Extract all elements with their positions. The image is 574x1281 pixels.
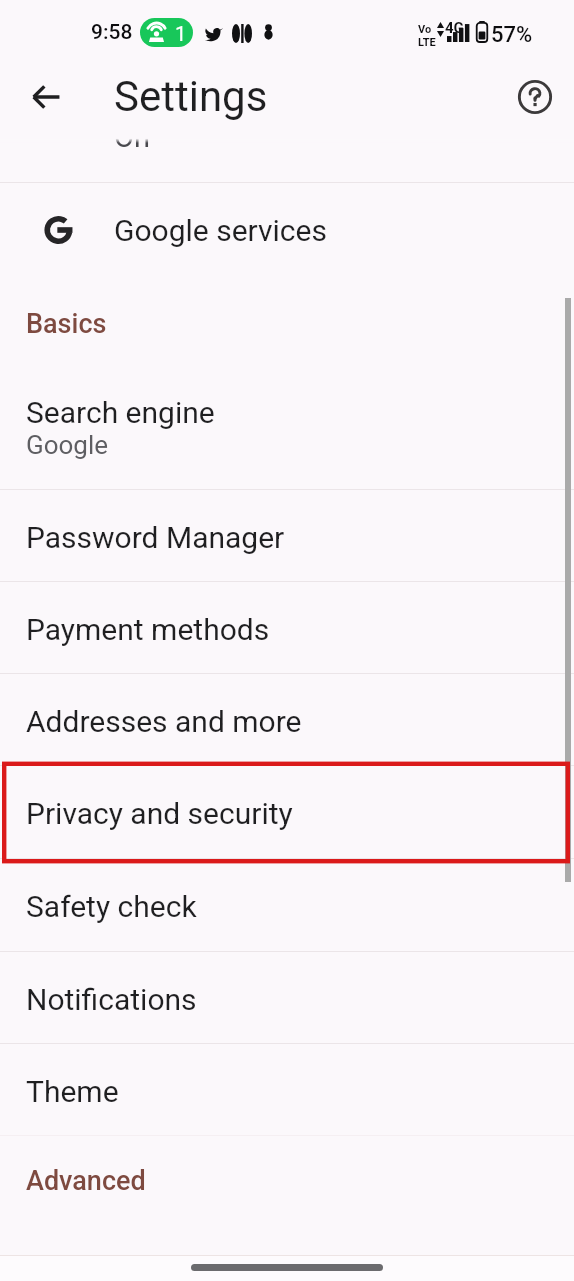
staticText: Settings [114,72,268,121]
staticText: Basics [26,308,107,340]
staticText: Privacy and security [26,796,293,831]
button[interactable]: Help [510,72,560,122]
staticText: Google services [114,213,327,248]
staticText: Payment methods [26,612,270,647]
button[interactable]: Notifications [0,951,574,1043]
staticText: 57% [491,22,533,48]
staticText: 4G [445,19,464,37]
button[interactable]: Back [19,70,73,124]
staticText: Password Manager [26,520,285,555]
staticText: Google [26,430,109,460]
button[interactable]: Safety check [0,858,574,950]
button[interactable]: Search engine [0,360,574,489]
staticText: Notifications [26,982,197,1017]
staticText: Advanced [26,1165,146,1197]
staticText: 1 [175,22,187,45]
button[interactable]: Payment methods [0,581,574,673]
button[interactable]: Theme [0,1043,574,1135]
button[interactable]: Privacy and security [0,765,574,857]
button[interactable]: Google services [0,183,574,290]
button[interactable]: Password Manager [0,489,574,581]
button[interactable]: Addresses and more [0,673,574,765]
staticText: LTE [418,36,436,49]
staticText: Theme [26,1074,119,1109]
staticText: Addresses and more [26,704,302,739]
staticText: 9:58 [91,20,133,45]
staticText: Vo [418,23,432,36]
staticText: Safety check [26,889,197,924]
staticText: Search engine [26,395,215,430]
staticText: On [114,136,150,154]
